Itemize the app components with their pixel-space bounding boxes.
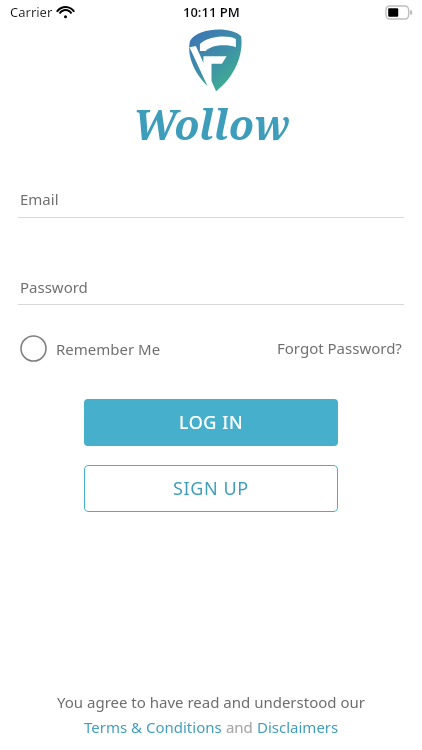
staticText: Wollow [133,96,290,152]
staticText: and [222,717,257,737]
staticText: Terms & Conditions [84,717,222,737]
button[interactable]: Terms & Conditions [84,717,222,737]
staticText: Password [20,277,88,297]
button[interactable]: Forgot Password? [277,338,402,358]
staticText: You agree to have read and understood ou… [57,692,365,712]
button[interactable]: SIGN UP [84,465,338,512]
button[interactable]: Remember Me [20,335,165,362]
staticText: Remember Me [56,339,161,359]
button[interactable]: LOG IN [84,399,338,446]
staticText: LOG IN [179,410,244,435]
staticText: SIGN UP [173,476,249,501]
staticText: 10:11 PM [183,3,240,21]
staticText: Email [20,189,59,209]
staticText: Disclaimers [257,717,339,737]
staticText: Forgot Password? [277,338,402,358]
button[interactable]: Disclaimers [257,717,339,737]
staticText: Carrier [10,3,53,21]
